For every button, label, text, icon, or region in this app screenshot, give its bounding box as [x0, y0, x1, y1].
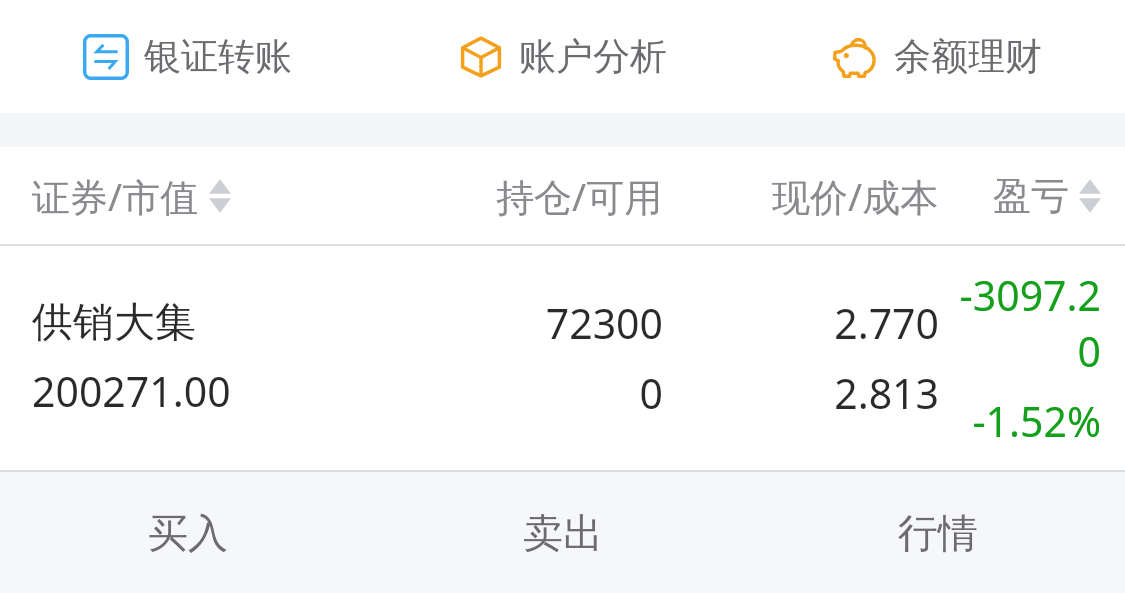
other: 银证转账 [83, 34, 129, 80]
other: 余额理财 [833, 34, 879, 80]
staticText: 现价/成本 [772, 170, 939, 222]
button[interactable]: 现价/成本 [663, 147, 939, 244]
button[interactable]: 证券/市值 [32, 147, 376, 244]
staticText: 200271.00 [32, 363, 231, 419]
button[interactable]: 卖出 [375, 472, 750, 593]
staticText: -3097.20 [939, 267, 1101, 379]
staticText: 0 [639, 365, 663, 421]
staticText: 卖出 [523, 508, 603, 558]
staticText: 72300 [545, 295, 663, 351]
button[interactable]: 余额理财 [750, 0, 1125, 113]
button[interactable]: 银证转账 [0, 0, 375, 113]
button[interactable]: 行情 [750, 472, 1125, 593]
button[interactable]: 供销大集 [0, 246, 1125, 470]
button[interactable]: 账户分析 [375, 0, 750, 113]
button[interactable]: 买入 [0, 472, 375, 593]
other: 排序 [1079, 174, 1101, 218]
staticText: 2.813 [834, 365, 939, 421]
other: 账户分析 [458, 34, 504, 80]
button[interactable]: 持仓/可用 [376, 147, 663, 244]
staticText: -1.52% [972, 393, 1101, 449]
staticText: 余额理财 [894, 33, 1042, 80]
staticText: 银证转账 [144, 33, 292, 80]
staticText: 供销大集 [32, 297, 196, 349]
staticText: 持仓/可用 [496, 170, 663, 222]
other: 排序 [209, 174, 231, 218]
staticText: 买入 [148, 508, 228, 558]
staticText: 账户分析 [519, 33, 667, 80]
staticText: 2.770 [834, 295, 939, 351]
staticText: 行情 [898, 508, 978, 558]
staticText: 证券/市值 [32, 170, 199, 222]
staticText: 盈亏 [993, 172, 1069, 220]
button[interactable]: 盈亏 [939, 147, 1101, 244]
